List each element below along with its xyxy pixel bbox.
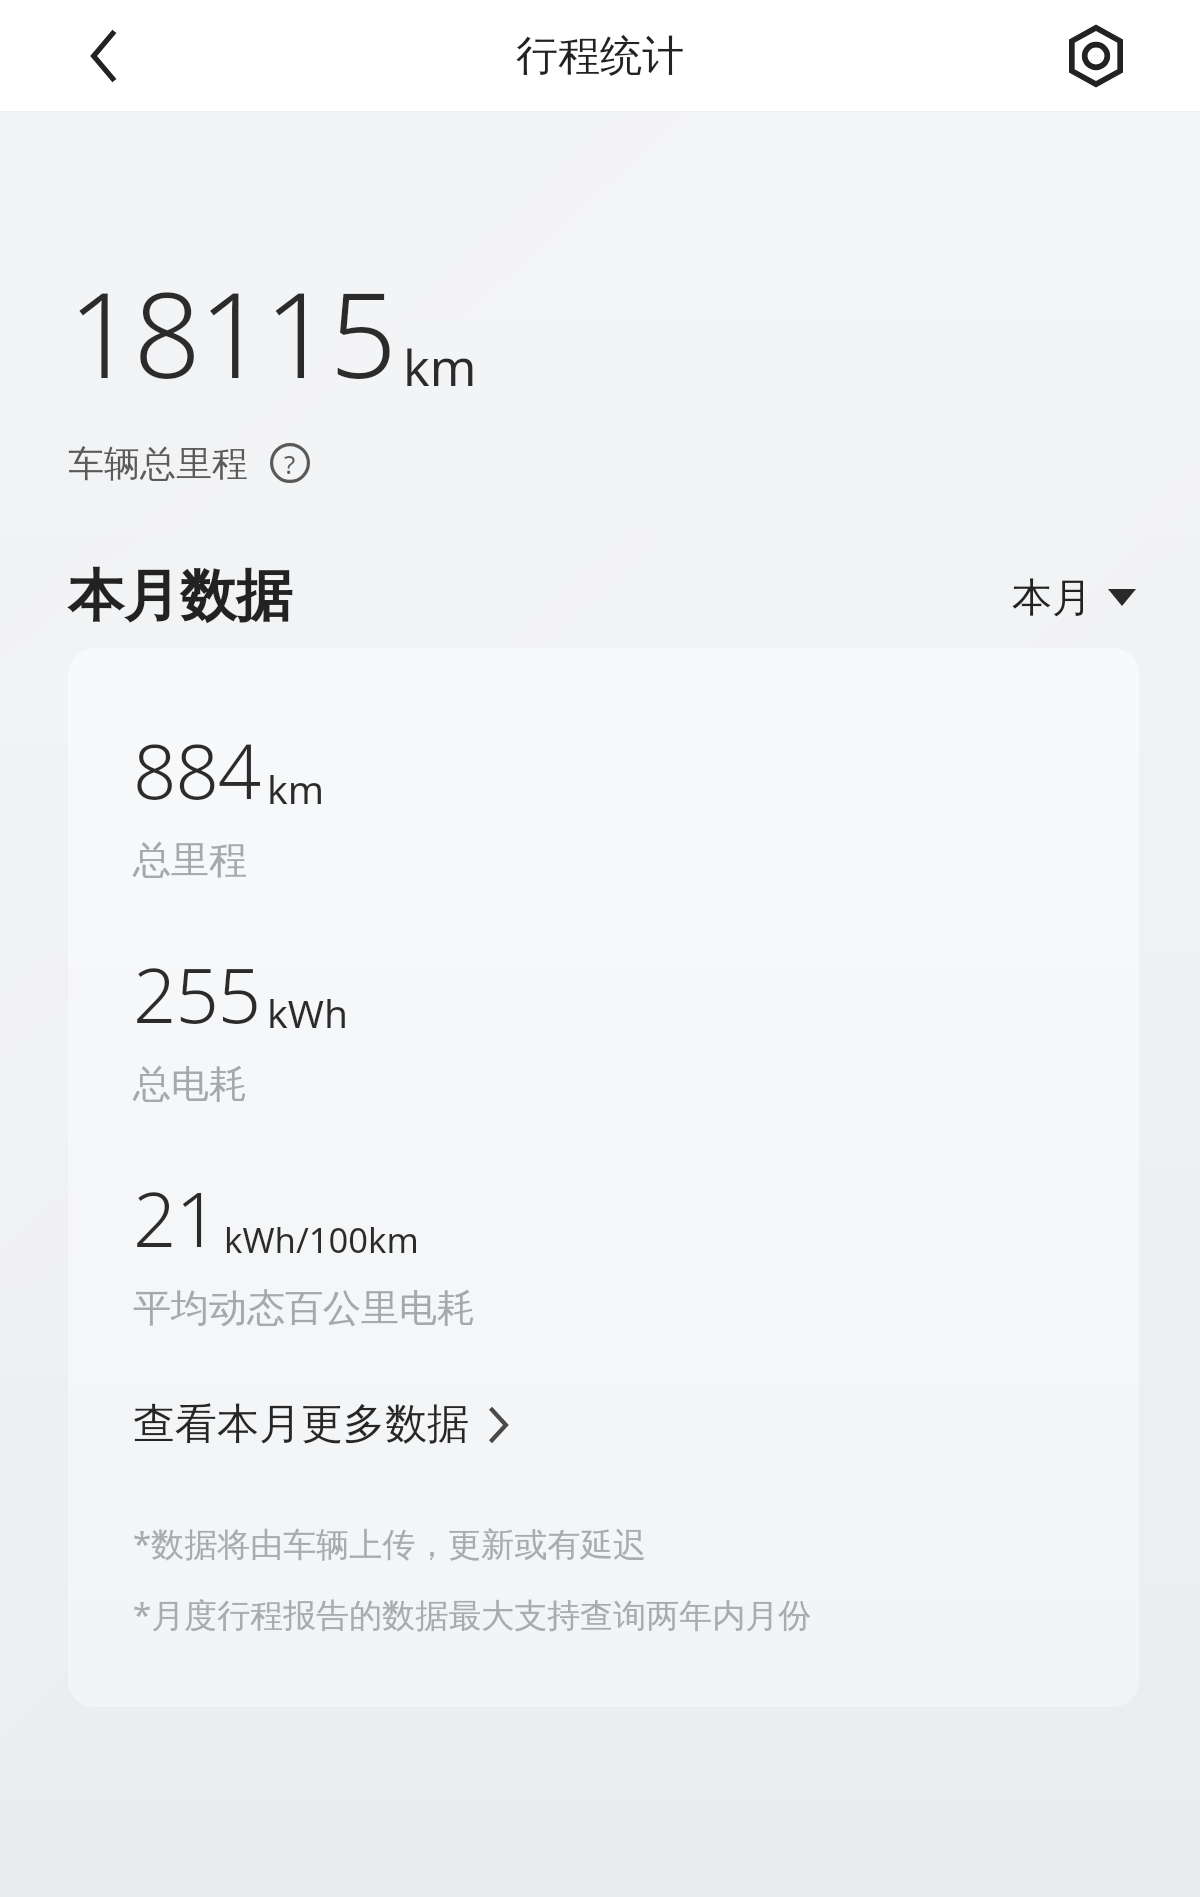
staticText: 255 <box>133 942 261 1046</box>
staticText: 车辆总里程 <box>68 441 248 486</box>
staticText: *数据将由车辆上传，更新或有延迟 <box>133 1521 647 1566</box>
staticText: km <box>403 333 477 401</box>
staticText: kWh/100km <box>224 1216 419 1263</box>
staticText: 884 <box>133 718 261 822</box>
button[interactable]: 本月 <box>1012 572 1136 622</box>
staticText: 本月 <box>1012 572 1092 622</box>
button[interactable]: Settings <box>1050 10 1142 102</box>
staticText: 行程统计 <box>516 30 684 83</box>
staticText: *月度行程报告的数据最大支持查询两年内月份 <box>133 1592 812 1637</box>
staticText: 查看本月更多数据 <box>133 1398 469 1451</box>
staticText: 总里程 <box>133 836 247 884</box>
staticText: 总电耗 <box>133 1060 247 1108</box>
staticText: 18115 <box>68 252 395 413</box>
button[interactable]: 查看本月更多数据 <box>133 1398 509 1451</box>
staticText: 21 <box>133 1166 218 1270</box>
button[interactable]: Back <box>58 10 150 102</box>
button[interactable]: Help about total mileage <box>262 435 318 491</box>
staticText: 平均动态百公里电耗 <box>133 1284 475 1332</box>
staticText: kWh <box>267 986 348 1039</box>
staticText: ? <box>284 446 296 481</box>
staticText: 本月数据 <box>68 561 292 632</box>
staticText: km <box>267 762 325 815</box>
